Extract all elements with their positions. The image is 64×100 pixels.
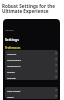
staticText: Settings	[5, 37, 19, 42]
staticText: Robust Settings for the Ultimate Experie…	[2, 3, 55, 15]
button[interactable]: Appearance	[5, 62, 58, 68]
staticText: About	[7, 95, 14, 98]
button[interactable]: About	[5, 93, 58, 99]
button[interactable]: Notifications	[5, 56, 58, 62]
staticText: Preferences	[5, 46, 21, 50]
staticText: Account	[7, 52, 17, 55]
button[interactable]: Privacy	[5, 68, 58, 74]
button[interactable]: Help Center	[5, 87, 58, 93]
button[interactable]: Storage	[5, 74, 58, 80]
staticText: Appearance	[7, 64, 21, 67]
staticText: Help Center	[7, 89, 21, 92]
staticText: Storage	[7, 76, 16, 79]
staticText: General	[5, 29, 14, 32]
staticText: Notifications	[7, 58, 22, 61]
button[interactable]: Account	[5, 50, 58, 56]
staticText: Privacy	[7, 70, 15, 73]
